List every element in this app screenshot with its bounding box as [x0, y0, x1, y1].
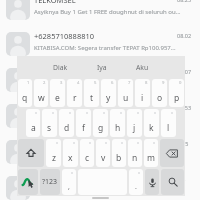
button[interactable]: d: [59, 109, 74, 137]
staticText: Aku: [136, 63, 149, 72]
staticText: 5: [94, 80, 97, 86]
button[interactable]: Iya: [81, 56, 122, 78]
staticText: a: [31, 122, 36, 134]
staticText: Iya: [97, 63, 107, 72]
button[interactable]: e: [50, 79, 65, 107]
staticText: r: [73, 92, 77, 104]
button[interactable]: ?123: [40, 169, 60, 195]
staticText: Promo GoFood hari ini diskon 50% semua m…: [34, 152, 182, 160]
staticText: 07.53: [177, 104, 192, 111]
button[interactable]: h: [110, 109, 125, 137]
button[interactable]: m: [144, 139, 158, 167]
staticText: 08.25: [177, 0, 192, 3]
staticText: o: [157, 92, 163, 104]
button[interactable]: a: [26, 109, 40, 137]
staticText: .: [135, 182, 137, 192]
button[interactable]: k: [144, 109, 159, 137]
button[interactable]: +6281234567890: [0, 104, 200, 140]
button[interactable]: g: [93, 109, 108, 137]
button[interactable]: n: [128, 139, 142, 167]
button[interactable]: +6285710888810: [0, 32, 200, 68]
button[interactable]: v: [96, 139, 110, 167]
staticText: Terima kasih telah berbelanja di toko ka…: [34, 116, 182, 124]
staticText: 12/5: [177, 140, 189, 147]
staticText: 9: [162, 80, 165, 86]
button[interactable]: y: [101, 79, 116, 107]
staticText: Shopee: [34, 175, 166, 185]
button[interactable]: TELKOMSEL: [0, 0, 200, 32]
staticText: BANK BCA: [34, 67, 166, 77]
button[interactable]: Shift: [18, 139, 44, 167]
button[interactable]: .: [129, 169, 143, 195]
staticText: ,: [68, 182, 70, 192]
staticText: Diak: [53, 63, 68, 72]
staticText: p: [174, 92, 180, 104]
button[interactable]: b: [112, 139, 126, 167]
staticText: b: [116, 152, 122, 164]
button[interactable]: f: [76, 109, 91, 137]
staticText: 5/5: [177, 176, 186, 183]
staticText: v: [101, 152, 106, 164]
staticText: +6281234567890: [34, 103, 166, 113]
staticText: f: [82, 122, 85, 134]
staticText: 8: [145, 80, 148, 86]
staticText: 4: [77, 80, 80, 86]
staticText: Asyiknya Buy 1 Get 1 FREE doughnut di se…: [34, 8, 182, 16]
staticText: 3: [60, 80, 63, 86]
staticText: g: [98, 122, 104, 134]
button[interactable]: x: [63, 139, 78, 167]
button[interactable]: Shopee: [0, 176, 200, 200]
button[interactable]: j: [127, 109, 142, 137]
button[interactable]: GOJEK: [0, 140, 200, 176]
button[interactable]: c: [80, 139, 94, 167]
button[interactable]: i: [135, 79, 150, 107]
button[interactable]: w: [34, 79, 48, 107]
staticText: Gratis ongkir se-Indonesia! Belanja seka…: [34, 188, 182, 196]
staticText: m: [147, 152, 155, 164]
button[interactable]: s: [42, 109, 57, 137]
button[interactable]: ,: [62, 169, 76, 195]
staticText: GOJEK: [34, 139, 166, 149]
button[interactable]: t: [84, 79, 99, 107]
staticText: d: [64, 122, 70, 134]
staticText: 6: [111, 80, 114, 86]
staticText: KITABISA.COM: Segera transfer TEPAT Rp10…: [34, 44, 182, 52]
staticText: l: [167, 122, 170, 134]
staticText: j: [133, 122, 136, 134]
staticText: w: [38, 92, 45, 104]
button[interactable]: r: [67, 79, 82, 107]
button[interactable]: l: [161, 109, 176, 137]
button[interactable]: o: [152, 79, 167, 107]
button[interactable]: u: [118, 79, 133, 107]
staticText: n: [132, 152, 138, 164]
staticText: 0: [179, 80, 182, 86]
staticText: +6285710888810: [34, 31, 166, 41]
button[interactable]: BANK BCA: [0, 68, 200, 104]
staticText: 2: [43, 80, 46, 86]
staticText: h: [115, 122, 121, 134]
staticText: k: [149, 122, 154, 134]
staticText: x: [68, 152, 73, 164]
button[interactable]: Diak: [40, 56, 81, 78]
staticText: u: [123, 92, 129, 104]
staticText: y: [106, 92, 111, 104]
staticText: s: [47, 122, 52, 134]
button[interactable]: Backspace: [160, 139, 184, 167]
staticText: ?123: [42, 177, 58, 187]
button[interactable]: q: [18, 79, 32, 107]
staticText: Anda menerima transfer dana sebesar Rp25…: [34, 80, 182, 88]
staticText: 7: [128, 80, 131, 86]
button[interactable]: Search: [161, 169, 184, 195]
button[interactable]: Aku: [122, 56, 163, 78]
button[interactable]: z: [46, 139, 61, 167]
staticText: e: [55, 92, 60, 104]
button[interactable]: Voice input: [145, 169, 159, 195]
staticText: i: [141, 92, 144, 104]
staticText: z: [52, 152, 56, 164]
staticText: 08.07: [177, 68, 192, 75]
button[interactable]: p: [169, 79, 184, 107]
button[interactable]: Handwriting: [18, 169, 38, 195]
staticText: TELKOMSEL: [34, 0, 166, 5]
staticText: c: [85, 152, 90, 164]
